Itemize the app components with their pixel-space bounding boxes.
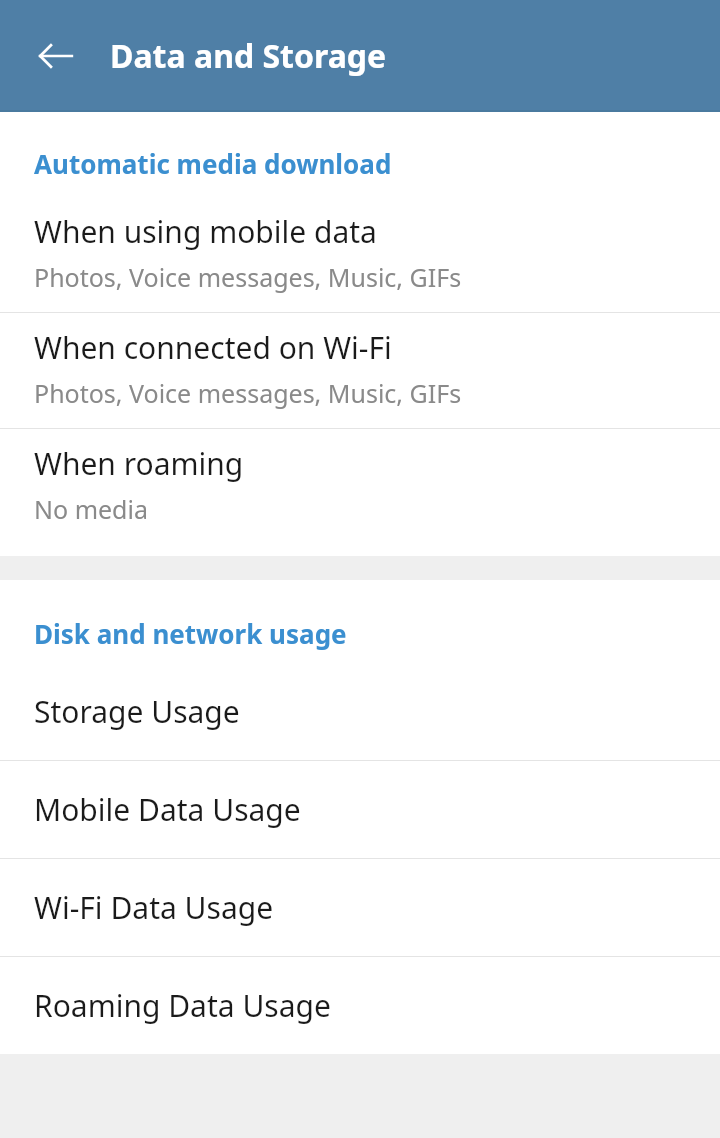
staticText: Automatic media download	[34, 146, 392, 181]
staticText: When roaming	[34, 443, 244, 484]
button[interactable]: Roaming Data Usage	[0, 957, 720, 1054]
staticText: Photos, Voice messages, Music, GIFs	[34, 260, 462, 294]
button[interactable]: When roaming	[0, 429, 720, 544]
staticText: Wi-Fi Data Usage	[34, 887, 274, 928]
button[interactable]: Back	[20, 20, 92, 92]
button[interactable]: Wi-Fi Data Usage	[0, 859, 720, 956]
staticText: Storage Usage	[34, 691, 240, 732]
staticText: When connected on Wi-Fi	[34, 327, 392, 368]
staticText: Data and Storage	[110, 34, 387, 78]
button[interactable]: When connected on Wi-Fi	[0, 313, 720, 428]
staticText: Photos, Voice messages, Music, GIFs	[34, 376, 462, 410]
staticText: No media	[34, 492, 148, 526]
button[interactable]: Storage Usage	[0, 663, 720, 760]
staticText: Disk and network usage	[34, 616, 347, 651]
staticText: Mobile Data Usage	[34, 789, 301, 830]
staticText: Roaming Data Usage	[34, 985, 331, 1026]
button[interactable]: Mobile Data Usage	[0, 761, 720, 858]
staticText: When using mobile data	[34, 211, 377, 252]
button[interactable]: When using mobile data	[0, 197, 720, 312]
